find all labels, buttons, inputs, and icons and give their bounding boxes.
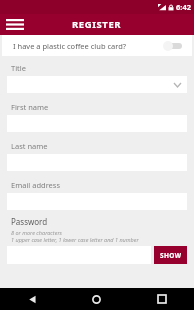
staticText: SHOW <box>160 251 182 260</box>
staticText: 1 upper case letter, 1 lower case letter… <box>11 236 139 243</box>
staticText: Email address <box>11 180 61 190</box>
staticText: 6:42 <box>176 2 191 12</box>
button[interactable]: Back <box>0 288 64 310</box>
button[interactable]: Recent apps <box>129 288 194 310</box>
button[interactable]: I have a plastic coffee club card? <box>2 35 192 56</box>
staticText: Title <box>11 63 26 73</box>
staticText: Password <box>11 216 48 227</box>
button[interactable]: SHOW <box>154 246 187 264</box>
staticText: I have a plastic coffee club card? <box>13 41 127 51</box>
button[interactable]: Open navigation menu <box>2 14 28 35</box>
button[interactable]: Title dropdown <box>7 76 187 93</box>
staticText: 8 or more characters <box>11 229 62 236</box>
staticText: Last name <box>11 141 48 151</box>
button[interactable]: Home <box>64 288 129 310</box>
staticText: REGISTER <box>72 18 122 31</box>
staticText: First name <box>11 102 49 112</box>
